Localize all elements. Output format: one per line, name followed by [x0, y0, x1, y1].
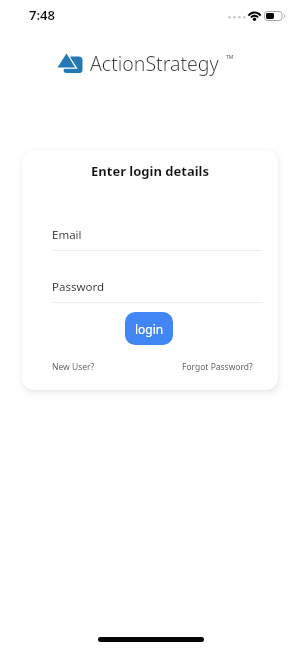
- staticText: New User?: [52, 361, 95, 373]
- staticText: Email: [52, 227, 82, 243]
- staticText: ActionStrategy: [90, 50, 219, 77]
- staticText: Forgot Password?: [182, 361, 253, 373]
- staticText: Enter login details: [22, 162, 278, 180]
- button[interactable]: login: [125, 312, 173, 345]
- staticText: 7:48: [29, 6, 55, 24]
- staticText: TM: [226, 54, 234, 61]
- staticText: Password: [52, 279, 105, 295]
- button[interactable]: Password: [52, 279, 105, 295]
- staticText: login: [135, 321, 164, 337]
- button[interactable]: Forgot Password?: [182, 361, 253, 373]
- button[interactable]: Email: [52, 227, 82, 243]
- button[interactable]: New User?: [52, 361, 95, 373]
